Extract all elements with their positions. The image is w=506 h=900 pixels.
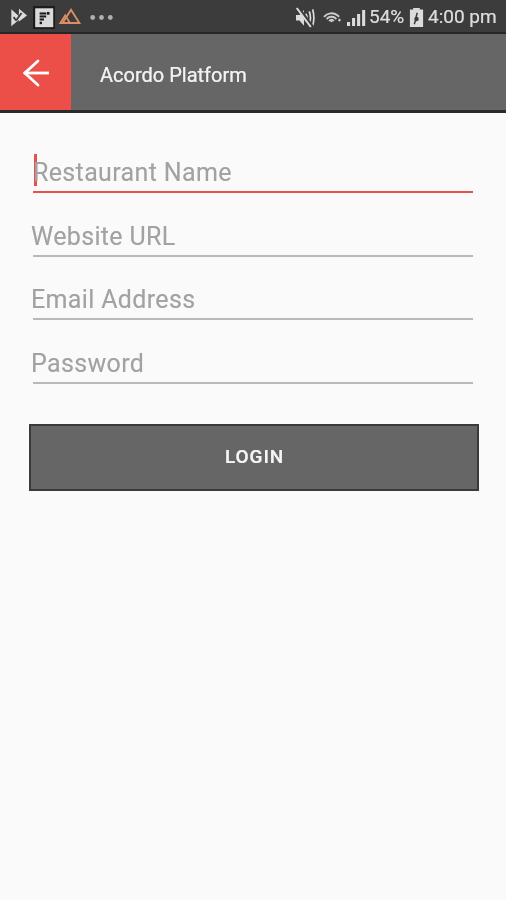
- staticText: 54%: [369, 5, 405, 27]
- staticText: 4:00 pm: [428, 5, 497, 27]
- button[interactable]: Restaurant Name: [0, 150, 506, 194]
- staticText: Restaurant Name: [33, 158, 232, 187]
- button[interactable]: Email Address: [0, 277, 506, 321]
- staticText: Email Address: [31, 285, 196, 314]
- button[interactable]: Back: [0, 34, 71, 110]
- staticText: Password: [31, 349, 145, 378]
- staticText: LOGIN: [225, 445, 285, 467]
- staticText: Acordo Platform: [100, 63, 247, 86]
- staticText: Website URL: [31, 222, 176, 251]
- button[interactable]: LOGIN: [29, 424, 479, 491]
- button[interactable]: Password: [0, 341, 506, 385]
- button[interactable]: Website URL: [0, 214, 506, 258]
